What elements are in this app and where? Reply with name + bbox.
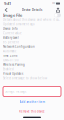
button[interactable]: Enable item <box>54 13 61 17</box>
button[interactable]: Remove this device <box>3 107 61 115</box>
staticText: Image File <box>3 13 22 18</box>
staticText: Select a message to show below <box>3 76 47 80</box>
staticText: Visual Updates <box>3 72 23 75</box>
staticText: Add another item <box>19 100 44 104</box>
staticText: Storage message <box>5 90 27 93</box>
staticText: Details about this device and where it c… <box>3 18 61 21</box>
staticText: Automatic <box>3 49 16 53</box>
staticText: Wireless Pairing <box>3 63 25 66</box>
staticText: Device Info <box>3 27 18 30</box>
staticText: ••• <box>52 2 55 5</box>
staticText: Current value <box>3 31 22 35</box>
button[interactable]: Share <box>55 7 61 13</box>
staticText: Enabled <box>3 67 14 71</box>
staticText: Network Configuration <box>3 45 35 48</box>
staticText: Battery Level <box>3 36 19 39</box>
staticText: Remove this device <box>19 110 45 113</box>
button[interactable]: Back <box>3 7 9 13</box>
staticText: Device Details <box>22 8 42 12</box>
staticText: Updated a moment ago <box>3 22 35 26</box>
button[interactable]: Add another item <box>3 96 61 107</box>
staticText: 85 percent <box>3 40 19 44</box>
staticText: Time Zone <box>3 54 18 57</box>
staticText: 9:41 <box>4 1 11 6</box>
staticText: GMT+01:00 <box>3 58 19 62</box>
